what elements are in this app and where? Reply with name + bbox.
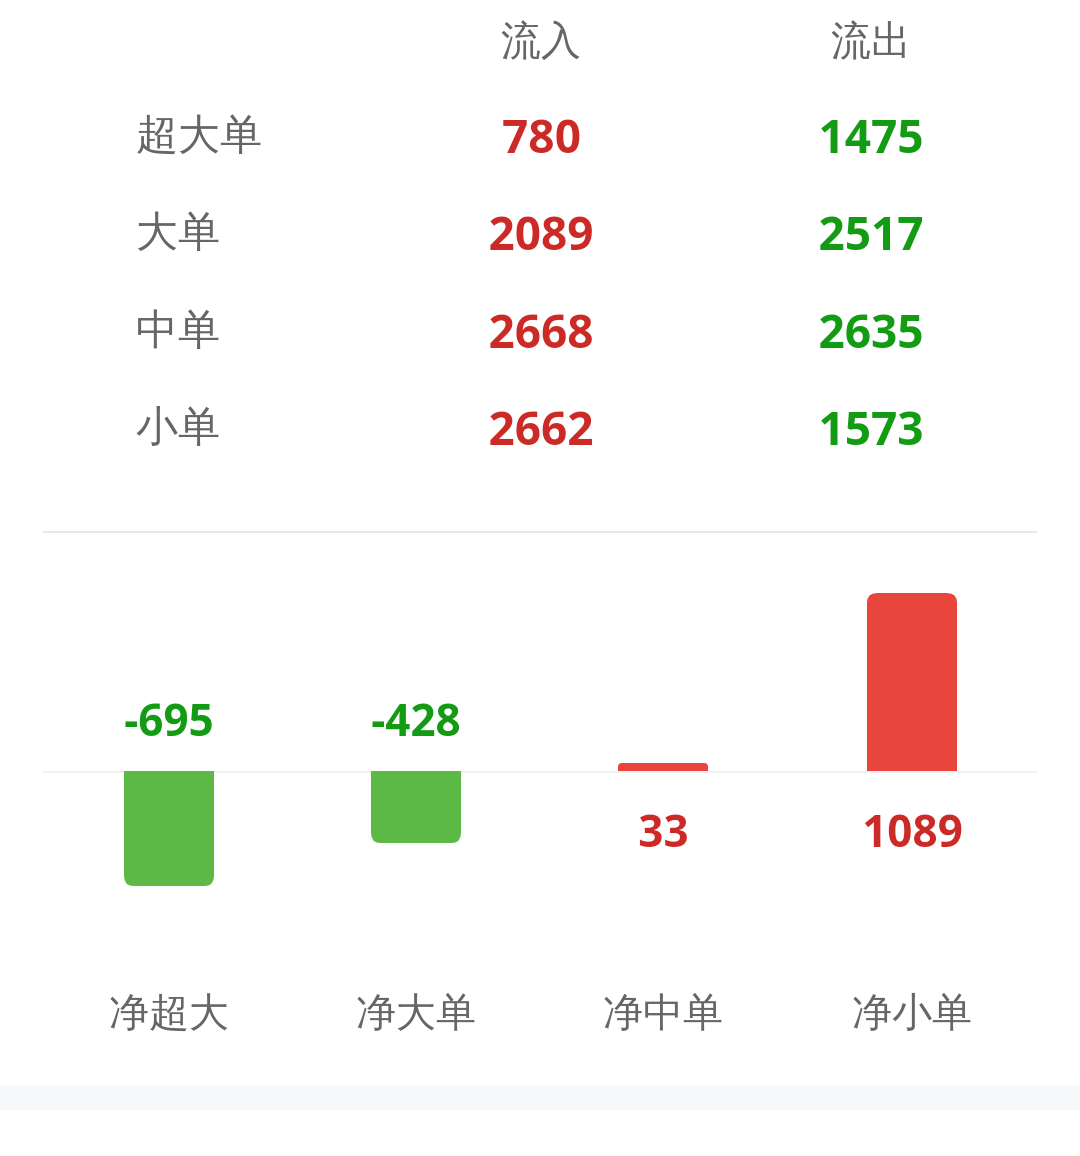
button[interactable] — [43, 282, 1037, 378]
staticText: 超大单 — [136, 109, 262, 162]
staticText: 2668 — [488, 299, 594, 362]
button[interactable]: 净超大 — [59, 977, 279, 1047]
staticText: -428 — [371, 689, 461, 749]
staticText: 净中单 — [603, 987, 723, 1037]
staticText: 净超大 — [109, 987, 229, 1037]
staticText: 1475 — [818, 104, 924, 167]
staticText: 净小单 — [852, 987, 972, 1037]
staticText: 流出 — [831, 15, 911, 65]
button[interactable]: 净大单 — [306, 977, 526, 1047]
staticText: 2517 — [818, 201, 924, 264]
staticText: 小单 — [136, 401, 220, 454]
staticText: 流入 — [501, 15, 581, 65]
staticText: 2089 — [488, 201, 594, 264]
staticText: -695 — [124, 689, 214, 749]
staticText: 2662 — [488, 396, 594, 459]
button[interactable] — [43, 379, 1037, 475]
staticText: 780 — [502, 104, 581, 167]
staticText: 净大单 — [356, 987, 476, 1037]
staticText: 1573 — [818, 396, 924, 459]
button[interactable]: 净小单 — [802, 977, 1022, 1047]
button[interactable] — [43, 184, 1037, 280]
staticText: 2635 — [818, 299, 924, 362]
button[interactable] — [43, 87, 1037, 183]
button[interactable]: 净中单 — [553, 977, 773, 1047]
staticText: 大单 — [136, 206, 220, 259]
staticText: 33 — [638, 800, 689, 860]
staticText: 中单 — [136, 304, 220, 357]
staticText: 1089 — [862, 800, 963, 860]
